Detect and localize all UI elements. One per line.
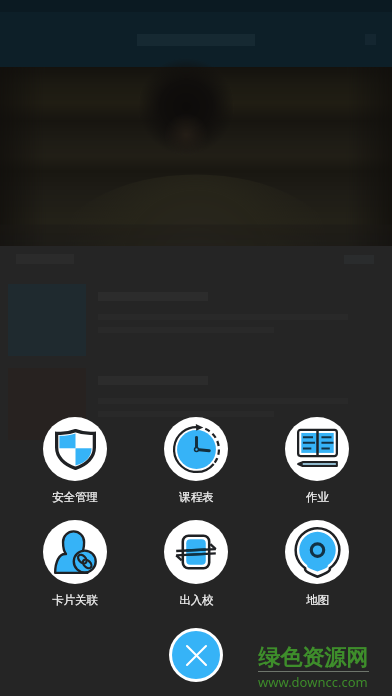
staticText: 绿色资源网 [258, 644, 368, 672]
staticText: 安全管理 [52, 490, 98, 504]
button[interactable]: Close [172, 631, 220, 679]
staticText: 课程表 [179, 490, 214, 504]
button[interactable]: 地图 [267, 520, 367, 607]
button[interactable]: 安全管理 [25, 417, 125, 504]
staticText: www.downcc.com [258, 673, 368, 691]
staticText: 作业 [306, 490, 329, 504]
button[interactable]: 课程表 [146, 417, 246, 504]
button[interactable]: 作业 [267, 417, 367, 504]
staticText: 地图 [306, 593, 329, 607]
button[interactable]: 出入校 [146, 520, 246, 607]
button[interactable]: 卡片关联 [25, 520, 125, 607]
staticText: 出入校 [179, 593, 214, 607]
staticText: 卡片关联 [52, 593, 98, 607]
